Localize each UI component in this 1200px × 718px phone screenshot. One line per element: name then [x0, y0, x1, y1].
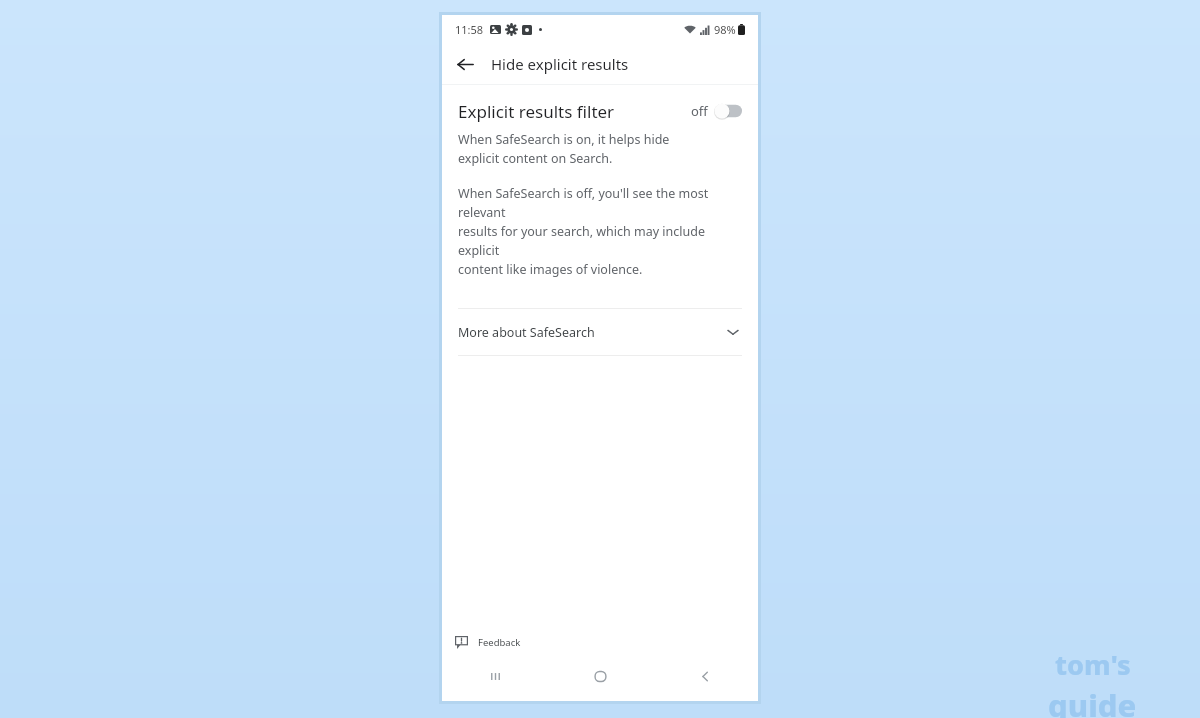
button[interactable]: Back — [449, 48, 481, 80]
staticText: guide — [1048, 684, 1137, 718]
staticText: More about SafeSearch — [458, 324, 726, 341]
staticText: Feedback — [478, 636, 521, 649]
button[interactable]: off — [689, 97, 744, 125]
button[interactable]: Recent apps — [442, 657, 548, 695]
staticText: 98% — [714, 22, 736, 37]
button[interactable]: Home — [548, 657, 653, 695]
button[interactable]: Feedback — [442, 627, 758, 657]
staticText: When SafeSearch is off, you'll see the m… — [458, 185, 742, 278]
staticText: off — [691, 102, 708, 120]
staticText: When SafeSearch is on, it helps hide exp… — [458, 131, 670, 167]
button[interactable]: More about SafeSearch — [442, 309, 758, 355]
staticText: 11:58 — [455, 22, 484, 37]
staticText: tom's — [1055, 646, 1131, 683]
staticText: Hide explicit results — [491, 54, 629, 74]
staticText: Explicit results filter — [458, 100, 689, 123]
button[interactable]: Back — [653, 657, 758, 695]
